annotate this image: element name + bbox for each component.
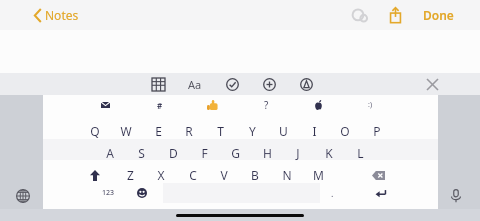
staticText: 123 [102, 188, 115, 198]
button[interactable]: T [206, 121, 234, 141]
staticText: C [189, 167, 197, 183]
staticText: Aa [188, 77, 202, 92]
staticText: V [220, 167, 228, 183]
button[interactable]: 123 [95, 183, 121, 203]
button[interactable]: H [253, 143, 281, 163]
staticText: J [296, 145, 300, 161]
button[interactable]: Dictate [441, 181, 471, 211]
button[interactable]: V [210, 165, 238, 185]
staticText: Done [423, 7, 454, 23]
staticText: G [231, 145, 240, 161]
button[interactable]: J [284, 143, 312, 163]
button[interactable]: R [175, 121, 203, 141]
staticText: E [155, 123, 162, 139]
button[interactable]: Aa [185, 74, 205, 94]
staticText: T [217, 123, 224, 139]
button[interactable]: . [322, 183, 342, 203]
button[interactable]: Emoji [130, 183, 154, 203]
button[interactable]: G [221, 143, 249, 163]
button[interactable] [201, 97, 223, 113]
button[interactable] [94, 97, 116, 113]
button[interactable]: Y [238, 121, 266, 141]
staticText: A [106, 145, 114, 161]
button[interactable]: E [144, 121, 172, 141]
button[interactable]: X [147, 165, 175, 185]
staticText: L [357, 145, 364, 161]
staticText: R [185, 123, 193, 139]
button[interactable]: K [315, 143, 343, 163]
staticText: I [312, 123, 317, 139]
button[interactable]: Notes [32, 3, 81, 27]
button[interactable]: Share [383, 3, 407, 27]
button[interactable]: A [96, 143, 124, 163]
button[interactable]: Shift [81, 165, 109, 185]
button[interactable]: Q [81, 121, 109, 141]
staticText: W [120, 123, 132, 139]
staticText: ? [264, 98, 269, 112]
staticText: M [313, 167, 324, 183]
button[interactable]: S [127, 143, 155, 163]
button[interactable]: W [112, 121, 140, 141]
button[interactable]: O [331, 121, 359, 141]
staticText: :) [368, 100, 372, 110]
button[interactable]: Return [368, 183, 392, 203]
staticText: U [279, 123, 288, 139]
staticText: D [169, 145, 178, 161]
staticText: H [263, 145, 272, 161]
button[interactable]: M [304, 165, 332, 185]
staticText: S [138, 145, 145, 161]
button[interactable]: # [149, 97, 171, 113]
staticText: Q [90, 123, 100, 139]
button[interactable]: Z [116, 165, 144, 185]
staticText: X [157, 167, 165, 183]
button[interactable]: Table [148, 74, 168, 94]
staticText: Notes [45, 7, 79, 23]
staticText: # [157, 100, 163, 111]
button[interactable]: D [159, 143, 187, 163]
staticText: Z [127, 167, 134, 183]
button[interactable]: F [190, 143, 218, 163]
button[interactable]: C [179, 165, 207, 185]
staticText: P [373, 123, 381, 139]
button[interactable]: N [273, 165, 301, 185]
button[interactable]: L [346, 143, 374, 163]
staticText: Y [249, 123, 256, 139]
button[interactable]: Add [259, 74, 279, 94]
button[interactable]: Collaborate [347, 3, 371, 27]
staticText: N [282, 167, 292, 183]
button[interactable] [307, 97, 329, 113]
button[interactable]: I [300, 121, 328, 141]
button[interactable]: U [269, 121, 297, 141]
button[interactable]: P [363, 121, 391, 141]
button[interactable]: Done [417, 3, 460, 27]
button[interactable]: B [241, 165, 269, 185]
button[interactable]: ? [255, 97, 277, 113]
staticText: K [325, 145, 333, 161]
staticText: O [340, 123, 350, 139]
staticText: B [251, 167, 259, 183]
button[interactable]: :) [359, 97, 381, 113]
button[interactable]: Markup [296, 74, 316, 94]
button[interactable]: Backspace [364, 165, 392, 185]
button[interactable]: Switch keyboard [8, 181, 38, 211]
staticText: F [201, 145, 208, 161]
staticText: . [331, 187, 334, 199]
button[interactable]: Close [422, 74, 442, 94]
button[interactable]: Checklist [222, 74, 242, 94]
